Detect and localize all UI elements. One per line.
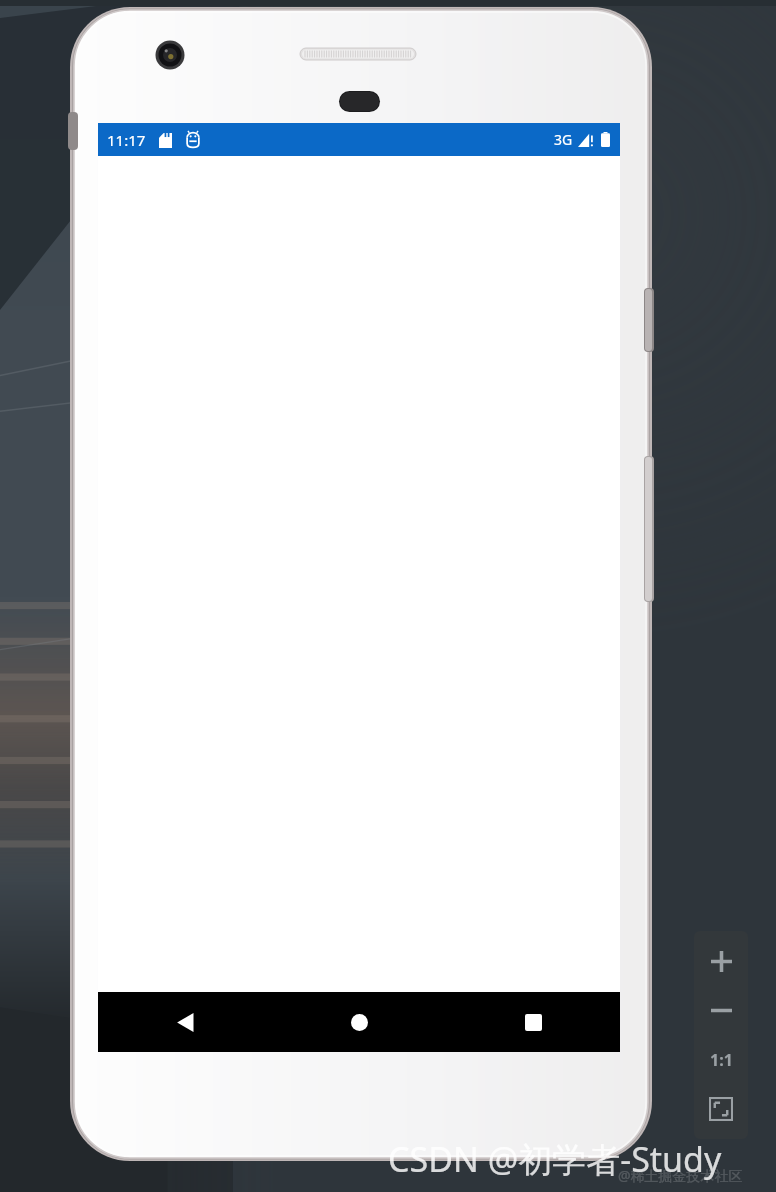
button[interactable]: Zoom out [701, 990, 741, 1030]
button[interactable]: Zoom in [701, 941, 741, 981]
button[interactable]: Home [272, 992, 446, 1052]
button[interactable]: Recent apps [446, 992, 620, 1052]
button[interactable]: Back [98, 992, 272, 1052]
staticText: 3G [554, 130, 573, 149]
staticText: CSDN @初学者-Study [388, 1136, 722, 1182]
staticText: @稀土掘金技术社区 [618, 1166, 743, 1185]
button[interactable]: 1:1 [701, 1040, 741, 1080]
button[interactable]: Fit to screen [701, 1089, 741, 1129]
staticText: 11:17 [107, 130, 146, 150]
staticText: 1:1 [710, 1049, 733, 1071]
